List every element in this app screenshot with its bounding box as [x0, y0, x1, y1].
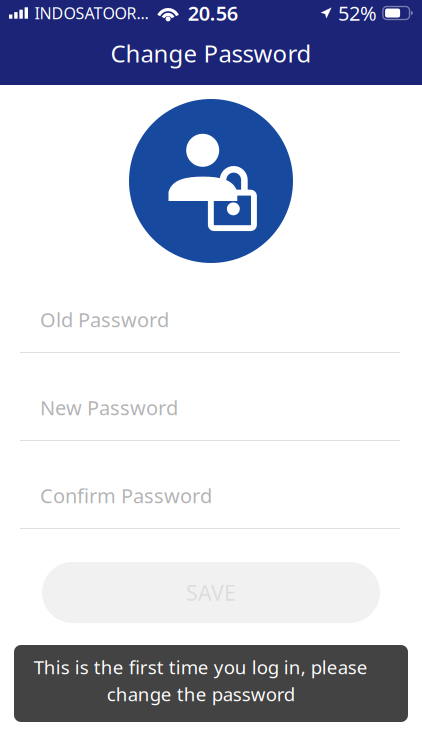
staticText: Confirm Password	[40, 482, 212, 509]
staticText: New Password	[40, 394, 178, 421]
staticText: 20.56	[188, 0, 238, 26]
staticText: This is the first time you log in, pleas…	[33, 655, 367, 706]
staticText: SAVE	[186, 578, 236, 607]
staticText: 52%	[338, 0, 377, 26]
staticText: INDOSATOOR...	[34, 2, 148, 24]
staticText: Change Password	[110, 37, 311, 69]
button[interactable]: SAVE	[42, 562, 380, 623]
staticText: Old Password	[40, 306, 169, 333]
